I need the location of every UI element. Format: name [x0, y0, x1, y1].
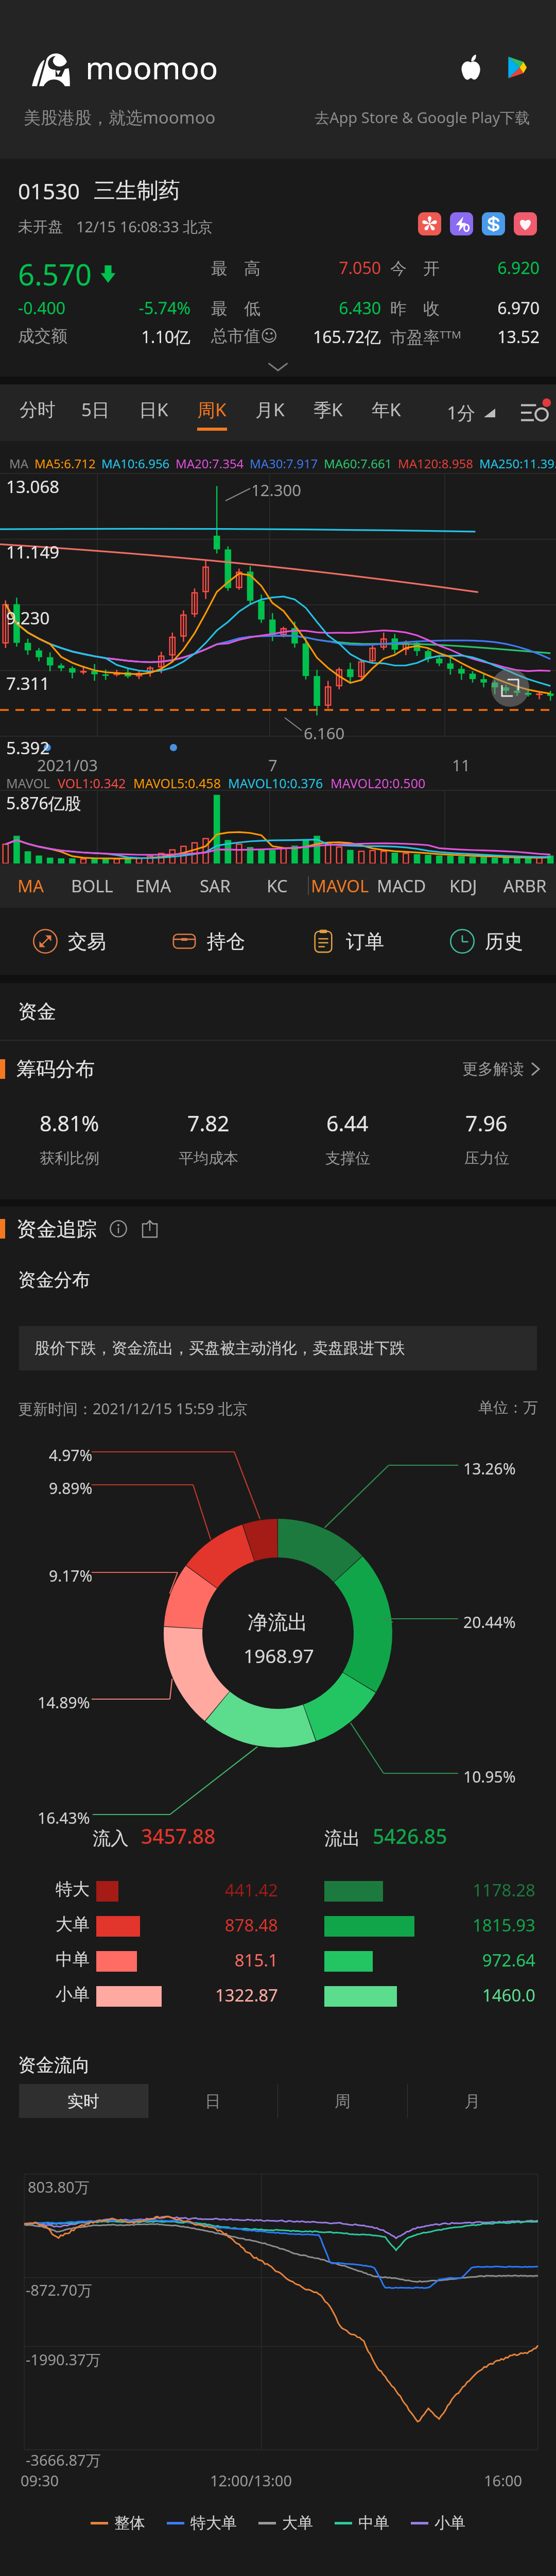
staticText: 1178.28: [407, 1878, 535, 1902]
staticText: -872.70万: [26, 2280, 93, 2300]
staticText: 2021/03: [37, 754, 98, 776]
staticText: 16.43%: [38, 1807, 90, 1828]
staticText: 6.430: [211, 297, 381, 319]
button[interactable]: 月K: [241, 384, 299, 441]
staticText: 5.876亿股: [6, 792, 81, 815]
button[interactable]: 交易: [0, 908, 139, 975]
button[interactable]: MACD: [371, 863, 432, 908]
staticText: 12.300: [251, 479, 301, 501]
staticText: 12/15 16:08:33 北京: [76, 216, 213, 237]
staticText: MA5:6.712: [34, 455, 96, 472]
button[interactable]: EMA: [123, 863, 184, 908]
staticText: 9.230: [6, 606, 50, 630]
button[interactable]: 日K: [125, 384, 183, 441]
staticText: 7.050: [211, 257, 381, 279]
staticText: 13.52: [390, 326, 540, 348]
staticText: 12:00/13:00: [210, 2470, 292, 2490]
button[interactable]: KC: [246, 863, 308, 908]
button[interactable]: Share: [140, 1218, 161, 1239]
button[interactable]: 整体: [91, 2513, 145, 2533]
staticText: MAVOL: [311, 874, 369, 897]
button[interactable]: 特大单: [167, 2513, 237, 2533]
button[interactable]: 7.96: [417, 1097, 556, 1200]
staticText: 最 高: [211, 257, 260, 279]
button[interactable]: 8.81%: [0, 1097, 139, 1200]
staticText: MA250:11.39...: [479, 455, 556, 472]
button[interactable]: 实时: [19, 2084, 148, 2118]
staticText: 1968.97: [244, 1642, 314, 1668]
button[interactable]: 5日: [66, 384, 125, 441]
staticText: 周: [335, 2091, 351, 2111]
button[interactable]: Derivative: [450, 212, 473, 235]
staticText: MAVOL10:0.376: [228, 774, 323, 792]
staticText: 972.64: [407, 1948, 535, 1972]
staticText: 3457.88: [141, 1822, 216, 1850]
button[interactable]: 更多解读: [462, 1059, 556, 1079]
button[interactable]: Favourite: [514, 212, 537, 235]
staticText: 支撑位: [325, 1149, 370, 1168]
staticText: MA: [18, 874, 44, 897]
staticText: 中单: [358, 2513, 389, 2533]
staticText: 大单: [56, 1913, 90, 1935]
staticText: 周K: [197, 397, 227, 422]
staticText: 6.970: [390, 297, 540, 319]
staticText: 流出: [324, 1827, 360, 1850]
button[interactable]: 月: [408, 2084, 537, 2118]
button[interactable]: 中单: [335, 2513, 389, 2533]
button[interactable]: KDJ: [432, 863, 494, 908]
staticText: SAR: [200, 874, 231, 897]
staticText: 更多解读: [462, 1059, 524, 1079]
staticText: 7: [268, 754, 277, 776]
staticText: 1815.93: [407, 1913, 535, 1937]
staticText: 1322.87: [175, 1984, 278, 2007]
button[interactable]: 订单: [278, 908, 417, 975]
staticText: 14.89%: [38, 1692, 90, 1713]
staticText: 压力位: [464, 1149, 509, 1168]
button[interactable]: 7.82: [139, 1097, 278, 1200]
button[interactable]: Dividend: [482, 212, 505, 235]
button[interactable]: 1分: [447, 400, 499, 425]
button[interactable]: 周: [278, 2084, 407, 2118]
button[interactable]: SAR: [184, 863, 246, 908]
staticText: 1460.0: [407, 1984, 535, 2007]
button[interactable]: Chart settings: [516, 395, 552, 431]
staticText: MA60:7.661: [324, 455, 392, 472]
staticText: VOL1:0.342: [58, 774, 126, 792]
staticText: MA30:7.917: [250, 455, 318, 472]
button[interactable]: BOLL: [61, 863, 123, 908]
button[interactable]: 历史: [417, 908, 556, 975]
button[interactable]: 6.44: [278, 1097, 417, 1200]
button[interactable]: 日: [148, 2084, 277, 2118]
staticText: 未开盘: [18, 217, 63, 236]
staticText: 6.920: [390, 257, 540, 279]
button[interactable]: 分时: [8, 384, 66, 441]
button[interactable]: 年K: [357, 384, 415, 441]
button[interactable]: Info: [108, 1218, 129, 1239]
staticText: 11: [452, 754, 471, 776]
staticText: 昨 收: [390, 297, 440, 319]
staticText: 7.96: [465, 1109, 508, 1138]
staticText: 历史: [485, 929, 523, 954]
staticText: 资金: [18, 999, 56, 1024]
button[interactable]: Fullscreen chart: [491, 669, 529, 707]
staticText: 单位：万: [478, 1398, 538, 1417]
staticText: 市盈率ᵀᵀᴹ: [390, 326, 461, 348]
button[interactable]: 小单: [411, 2513, 465, 2533]
button[interactable]: 季K: [299, 384, 357, 441]
staticText: 资金分布: [18, 1268, 90, 1291]
staticText: 平均成本: [179, 1149, 238, 1168]
button[interactable]: MAVOL: [309, 863, 371, 908]
staticText: 资金追踪: [16, 1216, 97, 1242]
staticText: 5.392: [6, 736, 50, 759]
staticText: 流入: [93, 1827, 129, 1850]
button[interactable]: 大单: [258, 2513, 313, 2533]
button[interactable]: MA: [0, 863, 61, 908]
button[interactable]: 持仓: [139, 908, 278, 975]
button[interactable]: Hong Kong: [418, 212, 441, 235]
staticText: 6.44: [326, 1109, 369, 1138]
staticText: 实时: [67, 2091, 99, 2111]
button[interactable]: ARBR: [494, 863, 556, 908]
staticText: 持仓: [207, 929, 245, 954]
staticText: 日: [205, 2091, 221, 2111]
button[interactable]: 周K: [183, 384, 241, 441]
